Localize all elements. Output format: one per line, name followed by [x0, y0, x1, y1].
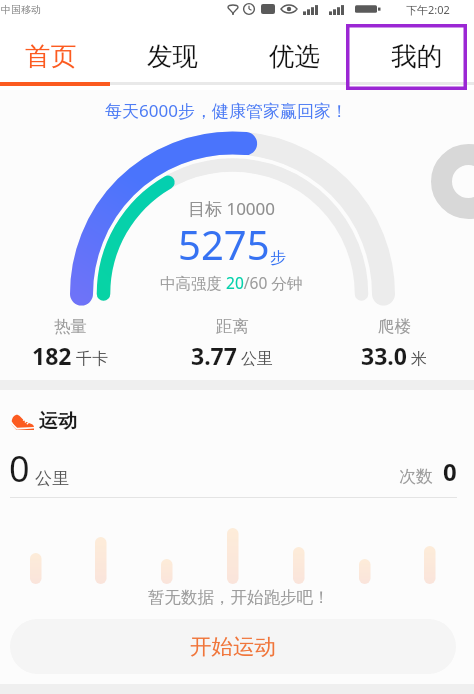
staticText: 爬楼 [378, 316, 411, 337]
staticText: 次数 [399, 466, 433, 487]
staticText: 开始运动 [190, 633, 276, 660]
staticText: 热量 [54, 316, 87, 337]
button[interactable]: Running [10, 409, 77, 433]
button[interactable]: 首页 [0, 18, 111, 83]
staticText: 首页 [25, 40, 76, 72]
staticText: 中高强度 20/60 分钟 [160, 272, 303, 293]
staticText: 中国移动 [1, 3, 41, 16]
staticText: 千卡 [76, 349, 108, 369]
staticText: 米 [411, 349, 427, 369]
staticText: 182 [32, 340, 72, 371]
staticText: 5275 [178, 217, 270, 271]
staticText: 下午2:02 [406, 2, 450, 17]
staticText: 每天6000步，健康管家赢回家！ [105, 99, 348, 122]
button[interactable]: 开始运动 [10, 619, 456, 674]
staticText: 公里 [35, 468, 69, 489]
staticText: 步 [270, 248, 286, 268]
button[interactable]: 我的 [355, 18, 474, 83]
button[interactable]: 热量 [0, 316, 140, 371]
button[interactable]: 距离 [162, 316, 302, 371]
staticText: 33.0 [361, 340, 407, 371]
staticText: 距离 [216, 316, 249, 337]
staticText: 3.77 [191, 340, 237, 371]
staticText: 公里 [241, 349, 273, 369]
staticText: 暂无数据，开始跑步吧！ [148, 587, 330, 608]
staticText: 目标 10000 [188, 197, 276, 220]
staticText: 优选 [269, 40, 320, 72]
staticText: 运动 [39, 409, 77, 433]
button[interactable]: 爬楼 [324, 316, 464, 371]
staticText: 0 [443, 455, 457, 488]
staticText: 我的 [391, 40, 442, 72]
staticText: 0 [9, 444, 30, 493]
button[interactable]: 发现 [111, 18, 233, 83]
button[interactable]: 优选 [233, 18, 355, 83]
other: Running [10, 412, 34, 430]
staticText: 发现 [147, 40, 198, 72]
